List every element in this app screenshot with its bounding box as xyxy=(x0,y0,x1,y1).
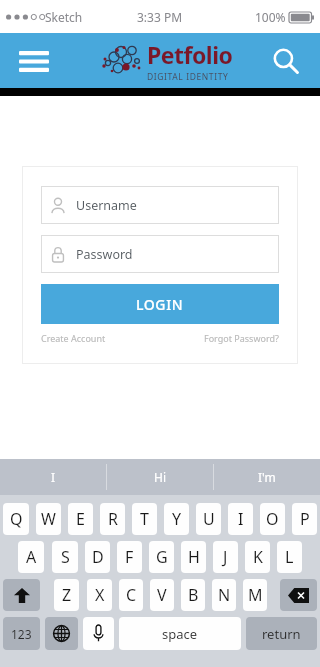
button[interactable]: L xyxy=(277,541,302,573)
staticText: 123 xyxy=(11,626,32,642)
button[interactable]: Shift xyxy=(3,579,40,611)
button[interactable]: I xyxy=(228,503,253,535)
staticText: L xyxy=(285,546,294,568)
staticText: B xyxy=(188,584,199,606)
staticText: N xyxy=(218,584,231,606)
staticText: O xyxy=(266,508,279,530)
button[interactable]: Create Account xyxy=(41,332,106,344)
button[interactable]: R xyxy=(100,503,125,535)
button[interactable]: P xyxy=(292,503,317,535)
staticText: Z xyxy=(62,584,72,606)
button[interactable]: W xyxy=(36,503,61,535)
button[interactable]: Hi xyxy=(107,459,213,495)
button[interactable]: 123 xyxy=(3,617,40,650)
button[interactable]: Y xyxy=(164,503,189,535)
button[interactable]: H xyxy=(181,541,206,573)
button[interactable]: space xyxy=(119,617,241,650)
staticText: W xyxy=(41,508,56,530)
button[interactable]: S xyxy=(52,541,78,573)
button[interactable]: F xyxy=(117,541,142,573)
staticText: Username xyxy=(76,197,137,214)
staticText: Create Account xyxy=(41,332,106,344)
button[interactable]: U xyxy=(196,503,221,535)
staticText: return xyxy=(262,625,301,643)
button[interactable]: V xyxy=(150,579,174,611)
staticText: 100% xyxy=(255,9,286,25)
staticText: A xyxy=(26,546,37,568)
button[interactable]: G xyxy=(149,541,174,573)
staticText: Sketch xyxy=(45,9,83,25)
staticText: space xyxy=(162,625,198,643)
button[interactable]: Backspace xyxy=(280,579,317,611)
staticText: Q xyxy=(10,508,23,530)
button[interactable]: T xyxy=(132,503,157,535)
button[interactable]: M xyxy=(243,579,267,611)
staticText: K xyxy=(253,546,263,568)
button[interactable]: Dictation xyxy=(83,617,114,650)
staticText: T xyxy=(140,508,149,530)
staticText: M xyxy=(248,584,263,606)
staticText: C xyxy=(126,584,137,606)
button[interactable]: E xyxy=(68,503,93,535)
button[interactable]: Forgot Password? xyxy=(204,332,279,344)
button[interactable]: Username xyxy=(41,186,279,224)
button[interactable]: C xyxy=(119,579,143,611)
button[interactable]: I xyxy=(0,459,106,495)
button[interactable]: Menu xyxy=(14,41,54,81)
button[interactable]: J xyxy=(213,541,238,573)
button[interactable]: K xyxy=(245,541,270,573)
staticText: R xyxy=(108,508,118,530)
button[interactable]: LOGIN xyxy=(41,284,279,324)
staticText: I xyxy=(51,469,56,485)
staticText: I'm xyxy=(258,469,276,485)
staticText: S xyxy=(61,546,70,568)
button[interactable]: I'm xyxy=(214,459,320,495)
button[interactable]: Switch keyboard xyxy=(45,617,78,650)
button[interactable]: return xyxy=(246,617,317,650)
staticText: 3:33 PM xyxy=(137,9,183,25)
staticText: J xyxy=(223,546,228,568)
staticText: I xyxy=(238,508,244,530)
button[interactable]: N xyxy=(212,579,236,611)
button[interactable]: Password xyxy=(41,235,279,273)
staticText: D xyxy=(92,546,104,568)
staticText: X xyxy=(95,584,105,606)
staticText: G xyxy=(156,546,168,568)
staticText: E xyxy=(76,508,85,530)
button[interactable]: A xyxy=(18,541,44,573)
button[interactable]: Q xyxy=(3,503,29,535)
button[interactable]: O xyxy=(260,503,285,535)
staticText: Hi xyxy=(154,469,166,485)
staticText: H xyxy=(188,546,200,568)
staticText: Password xyxy=(76,246,133,263)
staticText: U xyxy=(203,508,215,530)
button[interactable]: Z xyxy=(54,579,79,611)
button[interactable]: B xyxy=(181,579,205,611)
staticText: P xyxy=(300,508,310,530)
staticText: F xyxy=(125,546,134,568)
staticText: DIGITAL IDENTITY xyxy=(147,71,229,83)
staticText: LOGIN xyxy=(136,295,184,314)
button[interactable]: X xyxy=(87,579,112,611)
button[interactable]: Search xyxy=(266,41,306,81)
staticText: Y xyxy=(172,508,182,530)
button[interactable]: D xyxy=(85,541,110,573)
staticText: Petfolio xyxy=(147,39,233,70)
staticText: V xyxy=(157,584,167,606)
staticText: Forgot Password? xyxy=(204,332,279,344)
